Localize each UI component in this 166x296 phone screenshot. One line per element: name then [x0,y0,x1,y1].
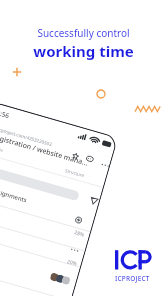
staticText: Successfully control [37,26,130,40]
staticText: People [0,145,4,153]
staticText: working time [33,41,134,61]
staticText: 28% [74,229,85,238]
staticText: Task Assignments [0,182,29,204]
staticText: Structure [64,167,85,178]
staticText: icproject.com/4253220503 [0,126,53,147]
staticText: Registration / website mana... [0,132,89,169]
staticText: 20% [66,258,78,268]
staticText: 8:56 [0,108,10,120]
staticText: ICPROJECT [115,274,150,283]
